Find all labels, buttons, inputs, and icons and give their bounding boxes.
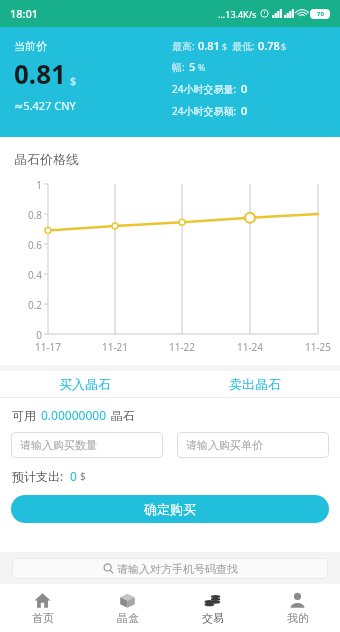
button[interactable]: 我的 [255,584,340,632]
staticText: 0.81 [198,38,220,53]
staticText: 11-17 [28,340,68,354]
staticText: 0.81 [14,56,66,91]
staticText: 晶石价格线 [14,151,79,167]
staticText: ...13.4K/s [218,8,257,20]
button[interactable]: 买入晶石 [0,371,170,397]
staticText: 首页 [32,611,54,625]
staticText: 18:01 [10,6,39,21]
staticText: 1 [12,178,42,192]
staticText: 幅: [172,60,185,74]
staticText: 24小时交易额: [172,104,237,118]
staticText: 0.2 [12,298,42,312]
staticText: 晶石 [111,408,135,423]
button[interactable]: 卖出晶石 [170,371,340,397]
staticText: 卖出晶石 [229,376,281,392]
button[interactable]: 交易 [170,584,255,632]
staticText: 5 [189,59,196,74]
staticText: 我的 [287,611,309,625]
staticText: % [198,61,206,73]
button[interactable]: 首页 [0,584,85,632]
staticText: 0.4 [12,268,42,282]
staticText: 预计支出: [12,468,64,484]
staticText: 0 [70,468,77,484]
staticText: $ [281,40,287,52]
staticText: ≈5.427 CNY [14,98,76,113]
staticText: 请输入对方手机号码查找 [117,562,238,576]
staticText: 0 [12,328,42,342]
staticText: 0 [241,81,248,96]
staticText: 最低: [232,39,255,53]
staticText: 可用 [12,408,36,423]
staticText: 最高: [172,39,195,53]
staticText: 0 [241,103,248,118]
button[interactable]: 请输入购买数量 [11,432,163,458]
staticText: 交易 [202,611,224,625]
staticText: 0.00000000 [41,407,106,423]
staticText: 0.78 [258,38,280,53]
staticText: 请输入购买数量 [20,438,97,452]
staticText: $ [222,40,228,52]
button[interactable]: 晶盒 [85,584,170,632]
staticText: 确定购买 [144,501,196,517]
staticText: 请输入购买单价 [186,438,263,452]
staticText: $ [70,73,77,88]
button[interactable]: 请输入对方手机号码查找 [12,558,328,579]
staticText: 晶盒 [117,611,139,625]
staticText: 当前价 [14,39,47,53]
button[interactable]: 确定购买 [11,495,329,523]
staticText: $ [80,469,86,483]
staticText: 买入晶石 [59,376,111,392]
staticText: 11-22 [162,340,202,354]
staticText: 24小时交易量: [172,82,237,96]
staticText: 0.8 [12,208,42,222]
staticText: 70 [317,10,324,18]
staticText: 11-24 [230,340,270,354]
button[interactable]: 请输入购买单价 [177,432,329,458]
staticText: 0.6 [12,238,42,252]
staticText: 11-21 [95,340,135,354]
staticText: 11-25 [298,340,338,354]
